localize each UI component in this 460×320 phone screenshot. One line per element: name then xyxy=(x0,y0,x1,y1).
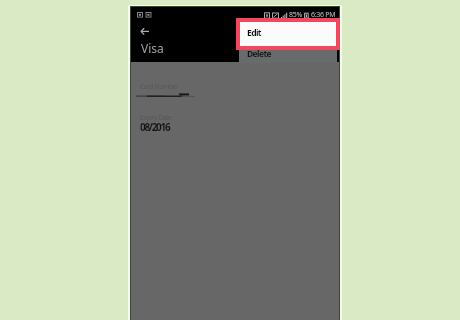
staticText: Card Number xyxy=(140,82,179,91)
staticText: Expiry Date xyxy=(140,113,172,122)
staticText: Edit xyxy=(247,27,261,39)
button[interactable]: Navigate up xyxy=(138,25,153,38)
staticText: 08/2016 xyxy=(140,120,170,134)
button[interactable]: Delete xyxy=(239,46,337,63)
button[interactable]: Edit xyxy=(239,21,337,46)
staticText: 6:36 PM xyxy=(311,10,336,20)
staticText: Visa xyxy=(141,40,164,56)
staticText: 85% xyxy=(289,10,302,20)
staticText: Delete xyxy=(247,48,272,60)
